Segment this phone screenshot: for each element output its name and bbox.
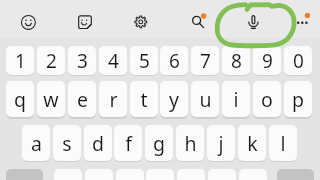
staticText: 2 — [46, 48, 57, 74]
button[interactable]: p — [284, 81, 312, 117]
button[interactable]: l — [269, 125, 297, 161]
button[interactable]: Settings — [125, 5, 157, 39]
button[interactable]: x — [85, 169, 113, 180]
button[interactable]: 9 — [253, 46, 281, 75]
button[interactable]: n — [208, 169, 236, 180]
button[interactable]: More options — [287, 5, 319, 39]
button[interactable]: h — [176, 125, 204, 161]
button[interactable]: m — [239, 169, 267, 180]
staticText: s — [62, 130, 72, 157]
staticText: w — [43, 86, 59, 113]
staticText: f — [125, 130, 132, 157]
staticText: t — [140, 86, 148, 113]
staticText: j — [218, 130, 224, 157]
button[interactable]: q — [6, 81, 34, 117]
staticText: h — [184, 130, 197, 157]
staticText: 9 — [262, 48, 273, 74]
staticText: u — [199, 86, 212, 113]
staticText: 8 — [231, 48, 242, 74]
button[interactable]: 1 — [6, 46, 34, 75]
button[interactable]: f — [114, 125, 142, 161]
button[interactable]: 8 — [222, 46, 250, 75]
button[interactable]: 3 — [68, 46, 96, 75]
staticText: y — [169, 86, 179, 113]
staticText: q — [14, 86, 26, 113]
staticText: e — [77, 86, 88, 113]
button[interactable]: g — [145, 125, 173, 161]
button[interactable]: k — [238, 125, 266, 161]
button[interactable]: z — [54, 169, 82, 180]
button[interactable]: e — [68, 81, 96, 117]
button[interactable]: 0 — [284, 46, 312, 75]
staticText: k — [247, 130, 258, 157]
button[interactable]: 6 — [160, 46, 188, 75]
button[interactable]: Stickers — [69, 5, 101, 39]
button[interactable]: 5 — [130, 46, 158, 75]
staticText: p — [292, 86, 304, 113]
button[interactable]: i — [222, 81, 250, 117]
staticText: 4 — [108, 48, 119, 74]
staticText: l — [280, 130, 286, 157]
button[interactable]: u — [191, 81, 219, 117]
button[interactable]: 4 — [99, 46, 127, 75]
button[interactable]: j — [207, 125, 235, 161]
staticText: 7 — [200, 48, 211, 74]
button[interactable]: r — [99, 81, 127, 117]
button[interactable]: y — [160, 81, 188, 117]
button[interactable]: 2 — [37, 46, 65, 75]
staticText: g — [153, 130, 165, 157]
button[interactable]: d — [84, 125, 112, 161]
button[interactable]: Search — [181, 5, 213, 39]
button[interactable]: a — [22, 125, 50, 161]
button[interactable]: Emoji — [12, 5, 44, 39]
button[interactable]: Voice input — [237, 5, 269, 39]
button[interactable]: b — [177, 169, 205, 180]
staticText: o — [261, 86, 273, 113]
staticText: i — [233, 86, 239, 113]
staticText: 5 — [139, 48, 150, 74]
staticText: r — [109, 86, 118, 113]
staticText: 3 — [77, 48, 88, 74]
button[interactable]: 7 — [191, 46, 219, 75]
staticText: a — [31, 130, 42, 157]
staticText: 0 — [293, 48, 304, 74]
button[interactable]: t — [130, 81, 158, 117]
button[interactable]: c — [116, 169, 144, 180]
button[interactable]: o — [253, 81, 281, 117]
button[interactable] — [6, 169, 43, 180]
staticText: d — [92, 130, 104, 157]
staticText: 1 — [15, 48, 26, 74]
button[interactable] — [277, 169, 314, 180]
button[interactable]: v — [146, 169, 174, 180]
button[interactable]: w — [37, 81, 65, 117]
button[interactable]: s — [53, 125, 81, 161]
staticText: 6 — [169, 48, 180, 74]
